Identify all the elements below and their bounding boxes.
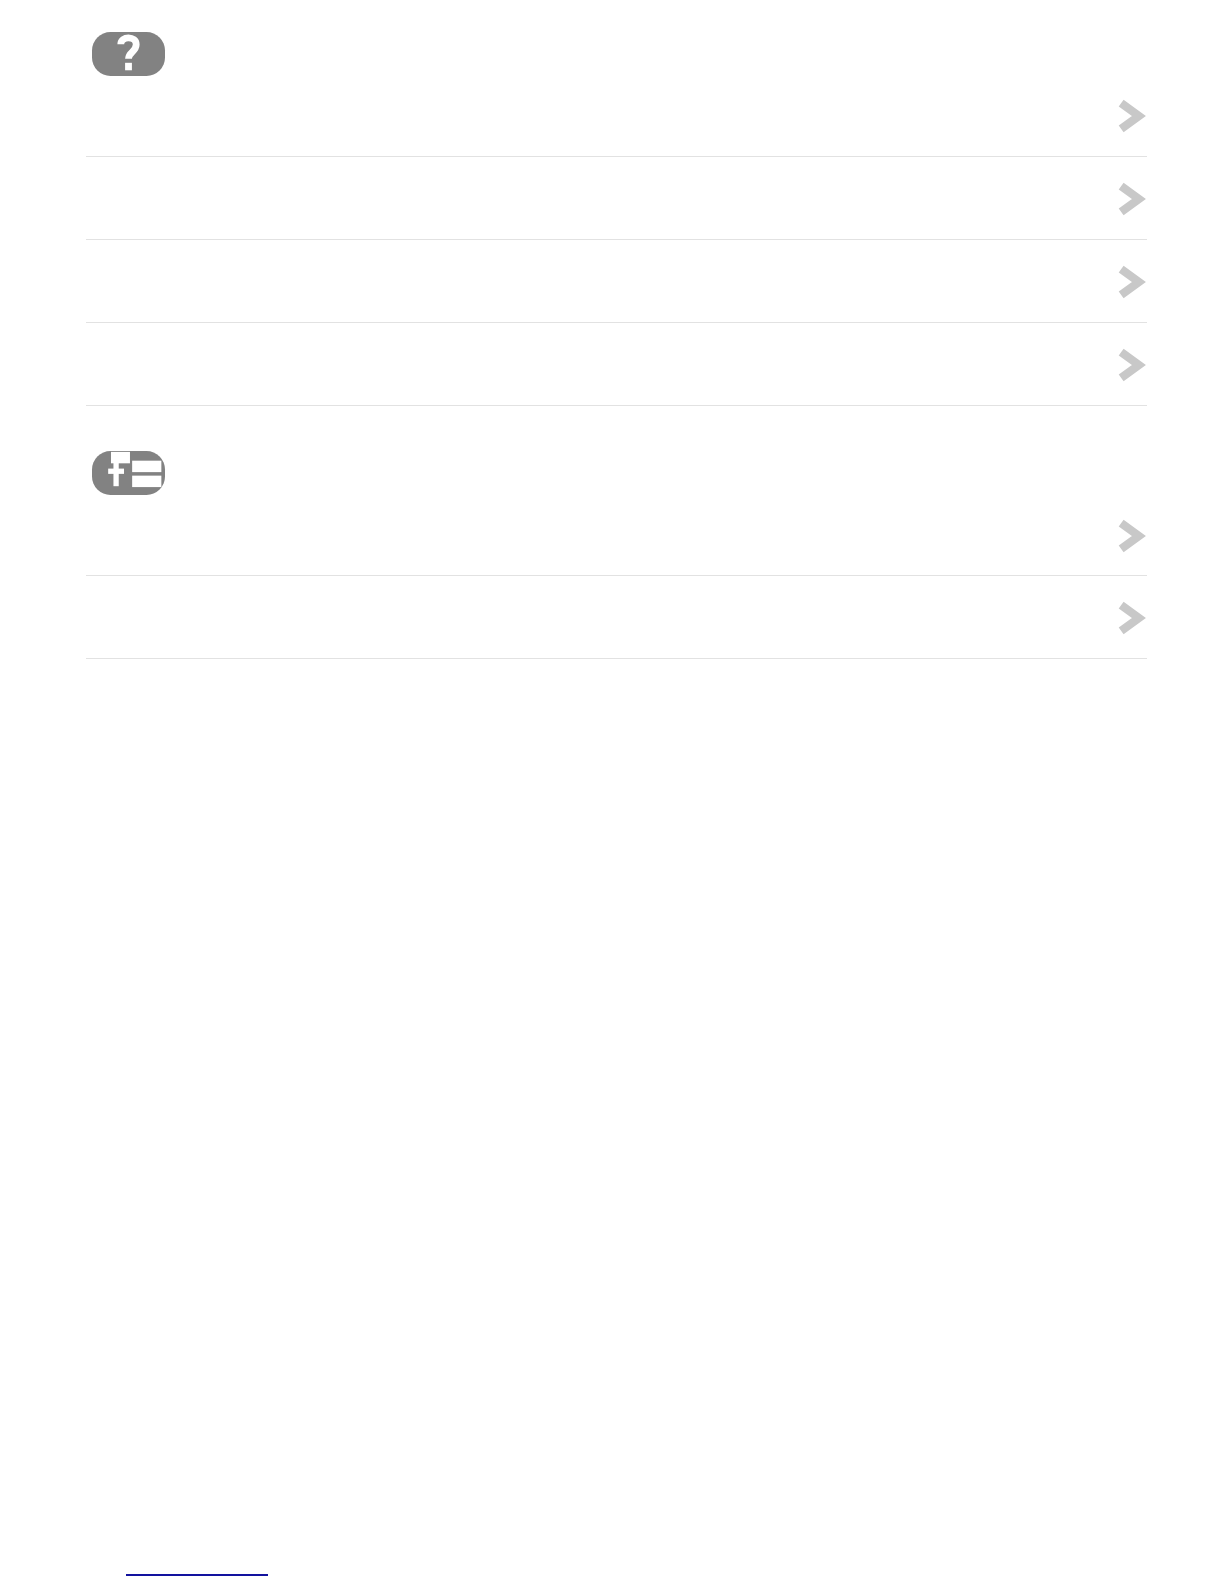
button[interactable]: Open item 1 — [0, 76, 1224, 157]
other: Open item 6 — [1117, 601, 1143, 635]
button[interactable]: Help — [92, 32, 165, 76]
button[interactable]: Open item 3 — [0, 240, 1224, 323]
other: Open item 1 — [1117, 99, 1143, 133]
other: Open item 3 — [1117, 265, 1143, 299]
button[interactable]: Open item 6 — [0, 576, 1224, 659]
button[interactable]: Open item 2 — [0, 157, 1224, 240]
other: Open item 5 — [1117, 519, 1143, 553]
button[interactable]: Timetable — [92, 451, 165, 495]
other: Open item 4 — [1117, 348, 1143, 382]
button[interactable]: Open item 4 — [0, 323, 1224, 406]
button[interactable]: Link — [126, 1571, 268, 1584]
other: Open item 2 — [1117, 182, 1143, 216]
button[interactable]: Open item 5 — [0, 495, 1224, 576]
